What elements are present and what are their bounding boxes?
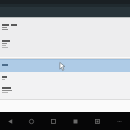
button[interactable]: Screenshot [64,112,86,130]
button[interactable] [0,59,130,72]
button[interactable]: More options [108,112,130,130]
button[interactable]: Back [0,112,21,130]
button[interactable]: Recents [42,112,64,130]
button[interactable] [0,4,130,17]
button[interactable]: Home [21,112,42,130]
button[interactable]: Split screen [86,112,108,130]
